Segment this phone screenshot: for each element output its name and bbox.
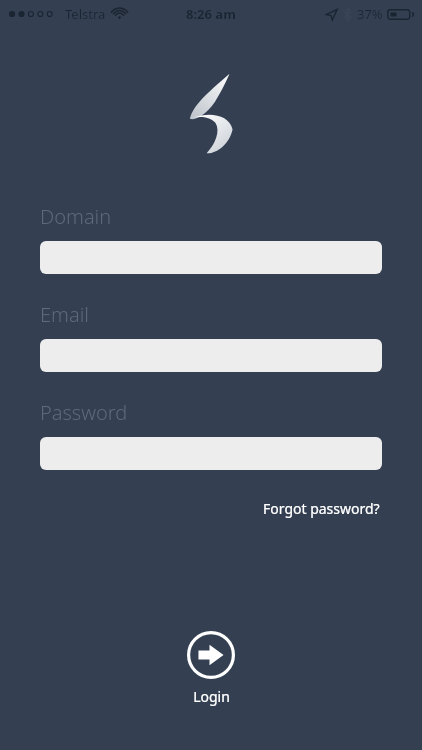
- staticText: Domain: [40, 203, 112, 230]
- staticText: Telstra: [65, 5, 106, 23]
- button[interactable]: Login: [168, 628, 254, 708]
- button[interactable]: Forgot password?: [261, 496, 382, 521]
- staticText: Forgot password?: [263, 499, 380, 518]
- button[interactable]: [40, 339, 382, 372]
- staticText: 8:26 am: [186, 5, 236, 23]
- staticText: 37%: [357, 5, 383, 23]
- other: Login: [186, 630, 236, 680]
- staticText: Password: [40, 399, 128, 426]
- button[interactable]: [40, 437, 382, 470]
- staticText: Email: [40, 301, 89, 328]
- button[interactable]: [40, 241, 382, 274]
- staticText: Login: [193, 687, 230, 706]
